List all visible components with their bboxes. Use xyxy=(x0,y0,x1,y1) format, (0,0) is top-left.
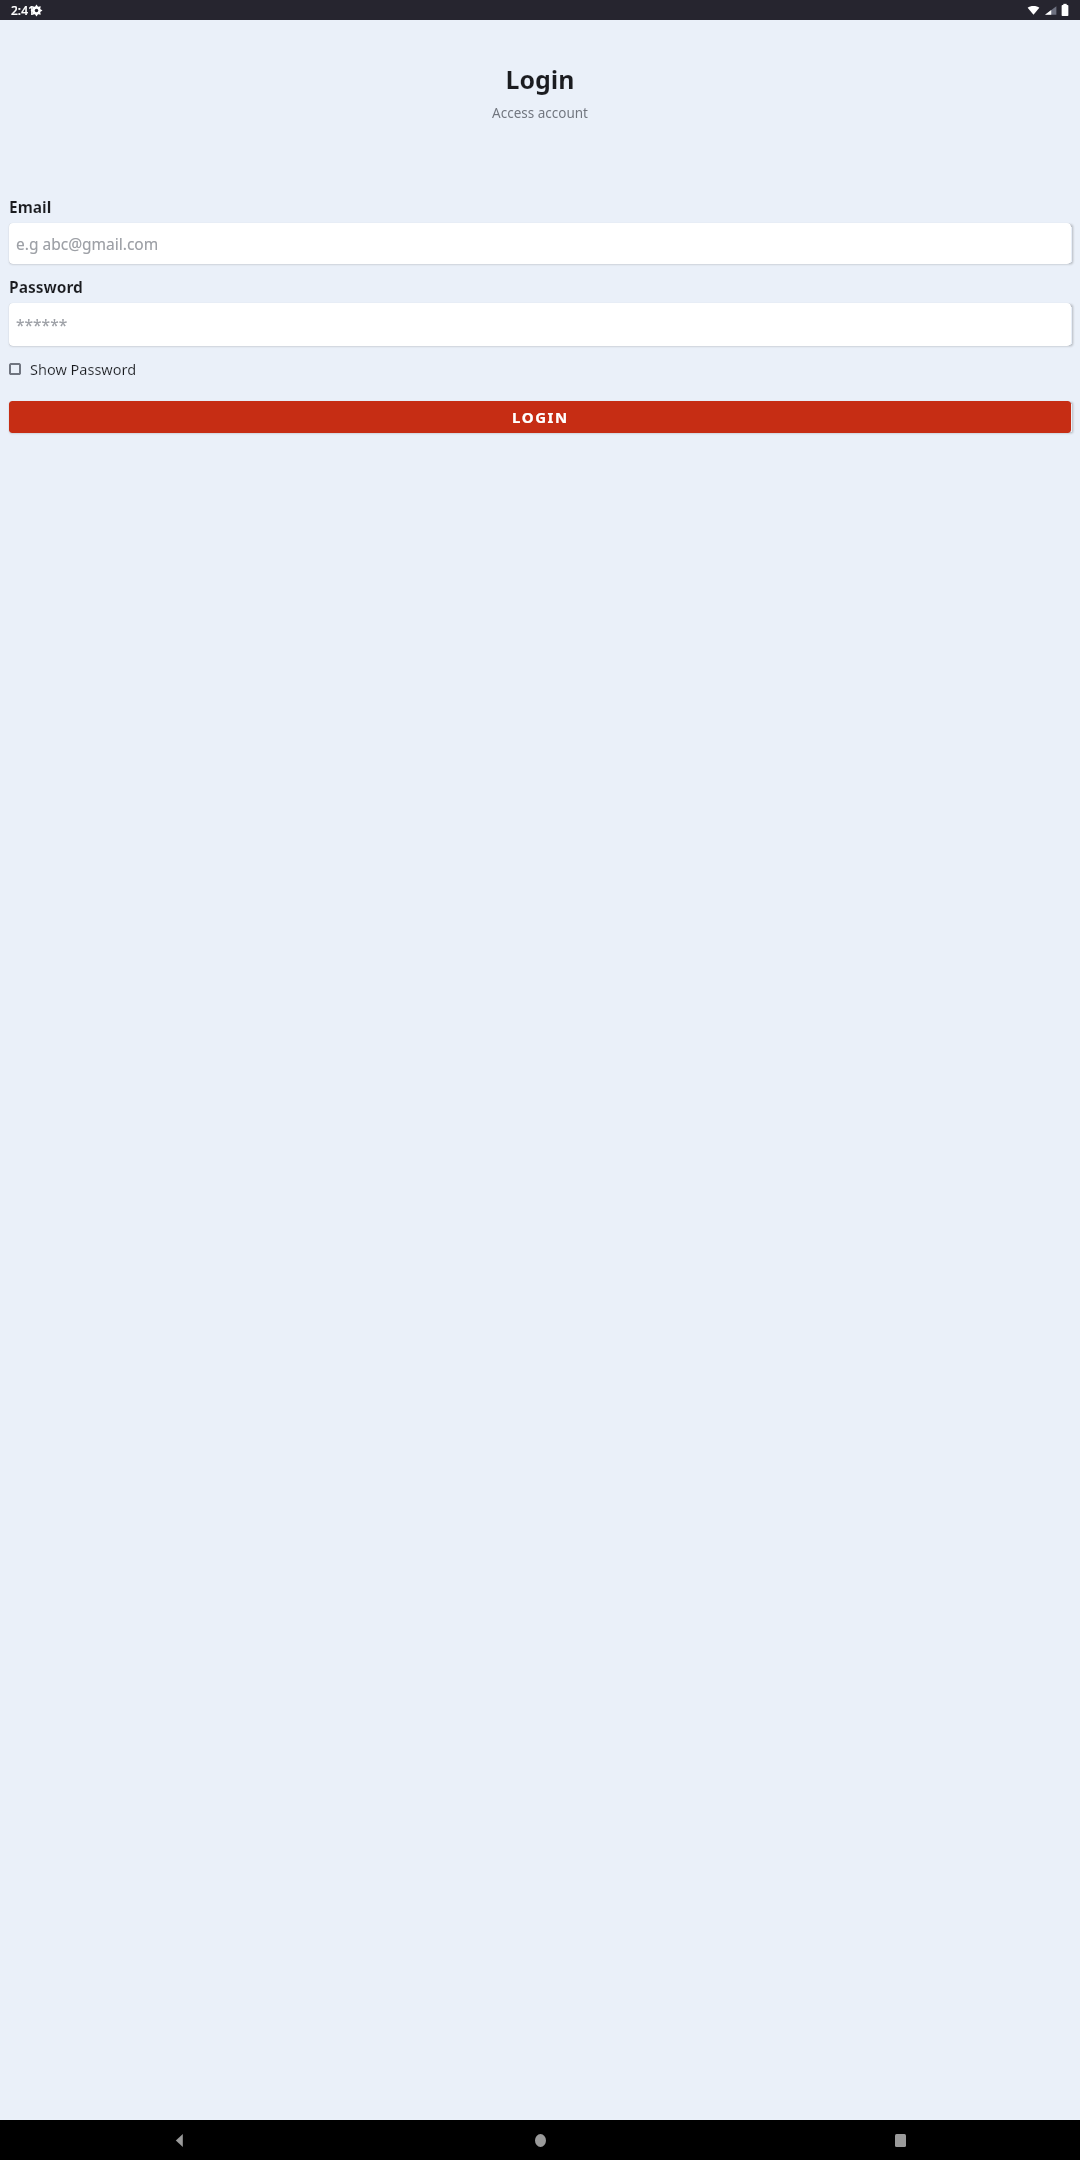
button[interactable]: Back xyxy=(0,2120,360,2160)
staticText: Show Password xyxy=(30,359,137,379)
button[interactable]: e.g abc@gmail.com xyxy=(9,223,1071,264)
staticText: Login xyxy=(0,62,1080,96)
staticText: ****** xyxy=(16,314,68,335)
button[interactable]: LOGIN xyxy=(9,401,1071,433)
staticText: e.g abc@gmail.com xyxy=(16,233,159,254)
button[interactable]: ****** xyxy=(9,303,1071,346)
staticText: Email xyxy=(9,196,1080,217)
staticText: 2:41 xyxy=(11,2,35,18)
button[interactable]: Recent apps xyxy=(720,2120,1080,2160)
button[interactable]: Show Password xyxy=(9,359,137,379)
staticText: Access account xyxy=(0,104,1080,122)
staticText: LOGIN xyxy=(512,407,569,427)
staticText: Password xyxy=(9,276,1080,297)
button[interactable]: Home xyxy=(360,2120,720,2160)
